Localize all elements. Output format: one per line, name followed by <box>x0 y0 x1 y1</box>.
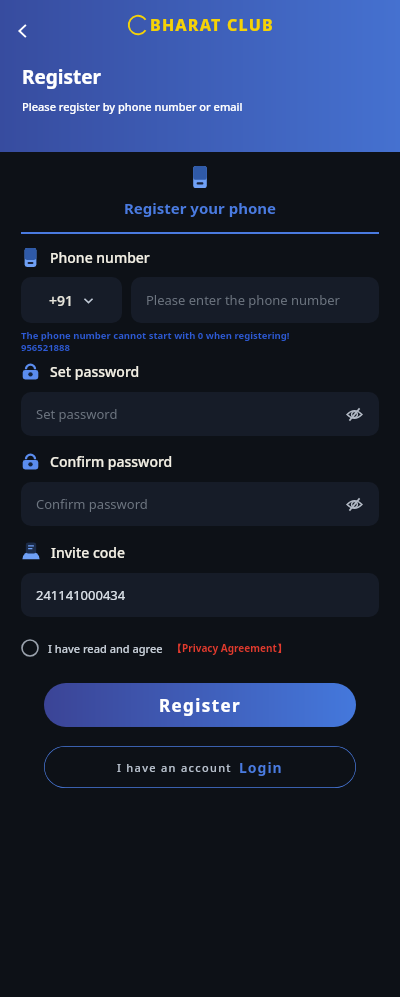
staticText: +91 <box>49 291 74 310</box>
button[interactable]: Register your phone <box>0 152 400 234</box>
button[interactable]: Register <box>44 683 356 727</box>
button[interactable]: Back <box>6 14 40 48</box>
staticText: Set password <box>50 362 140 381</box>
button[interactable]: Please enter the phone number <box>131 277 379 323</box>
button[interactable]: +91 <box>21 277 122 323</box>
staticText: Please enter the phone number <box>146 291 340 309</box>
staticText: Phone number <box>50 248 150 267</box>
staticText: The phone number cannot start with 0 whe… <box>21 329 290 354</box>
button[interactable]: I have an account <box>44 746 356 788</box>
staticText: I have read and agree <box>48 641 163 656</box>
staticText: Invite code <box>51 543 126 562</box>
button[interactable]: Show password <box>341 491 367 517</box>
button[interactable]: Confirm password <box>21 482 379 526</box>
button[interactable]: I have read and agree <box>21 639 287 657</box>
button[interactable]: Set password <box>21 392 379 436</box>
staticText: Register <box>159 694 241 717</box>
staticText: Register your phone <box>124 198 276 218</box>
staticText: BHARAT CLUB <box>150 14 274 36</box>
staticText: 【Privacy Agreement】 <box>172 641 287 655</box>
staticText: Login <box>239 758 283 777</box>
staticText: Set password <box>36 405 118 423</box>
button[interactable]: 241141000434 <box>21 573 379 617</box>
button[interactable]: Show password <box>341 401 367 427</box>
staticText: Register <box>22 64 102 90</box>
staticText: 241141000434 <box>36 586 126 604</box>
staticText: I have an account <box>117 760 232 775</box>
staticText: Confirm password <box>36 495 148 513</box>
staticText: Confirm password <box>50 452 173 471</box>
staticText: Please register by phone number or email <box>22 99 243 114</box>
